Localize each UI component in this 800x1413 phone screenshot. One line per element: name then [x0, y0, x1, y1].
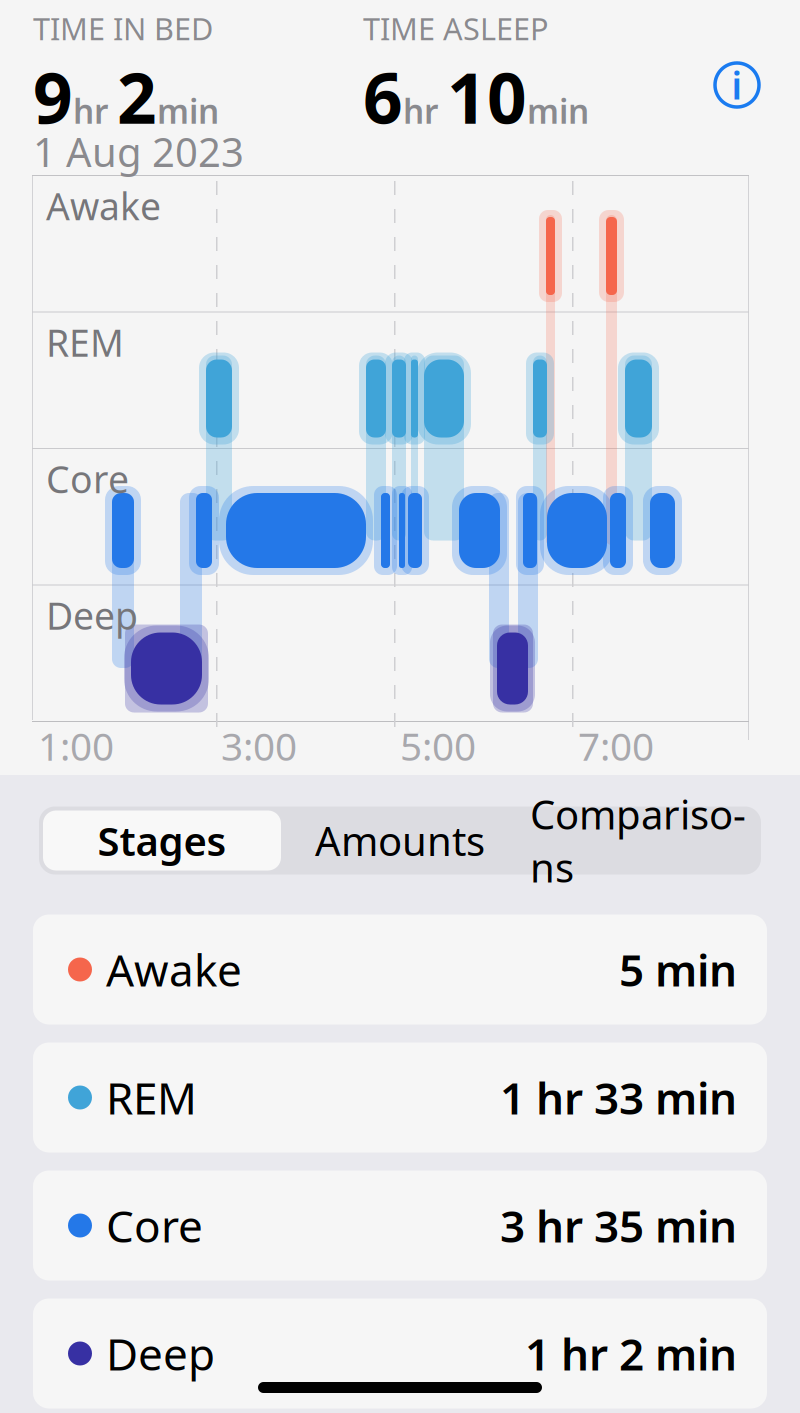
button[interactable]: Stages — [43, 810, 281, 870]
staticText: REM — [106, 1068, 197, 1127]
button[interactable]: Amounts — [281, 810, 519, 870]
button[interactable]: Deep — [33, 1298, 767, 1408]
staticText: Deep — [106, 1324, 215, 1383]
staticText: i — [731, 60, 742, 110]
staticText: Awake — [46, 181, 161, 231]
staticText: Comparisons — [530, 787, 746, 894]
button[interactable]: Comparisons — [519, 810, 757, 870]
staticText: 5 min — [619, 940, 737, 999]
button[interactable]: Awake — [33, 914, 767, 1024]
staticText: REM — [46, 317, 124, 367]
staticText: hr — [73, 89, 108, 133]
staticText: Amounts — [315, 814, 485, 867]
staticText: Deep — [46, 590, 138, 640]
staticText: 3 hr 35 min — [500, 1196, 737, 1255]
staticText: 9 — [33, 51, 73, 143]
staticText: 7:00 — [578, 720, 654, 771]
staticText: TIME ASLEEP — [363, 8, 549, 49]
staticText: 3:00 — [221, 720, 297, 771]
staticText: TIME IN BED — [33, 8, 213, 49]
staticText: 1 hr 33 min — [500, 1068, 737, 1127]
staticText: min — [527, 89, 589, 133]
staticText: 1 hr 2 min — [525, 1324, 737, 1383]
staticText: 1:00 — [38, 720, 114, 771]
staticText: 6 — [363, 51, 403, 143]
staticText: 10 — [447, 51, 527, 143]
button[interactable]: Core — [33, 1170, 767, 1280]
button[interactable]: REM — [33, 1042, 767, 1152]
staticText: Awake — [106, 940, 242, 999]
staticText: 1 Aug 2023 — [33, 125, 244, 178]
staticText: hr — [403, 89, 438, 133]
staticText: Stages — [97, 814, 226, 867]
button[interactable]: About sleep stages — [706, 54, 768, 116]
staticText: Core — [46, 454, 129, 504]
staticText: Core — [106, 1196, 203, 1255]
staticText: min — [157, 89, 219, 133]
staticText: 2 — [117, 51, 157, 143]
staticText: 5:00 — [400, 720, 476, 771]
